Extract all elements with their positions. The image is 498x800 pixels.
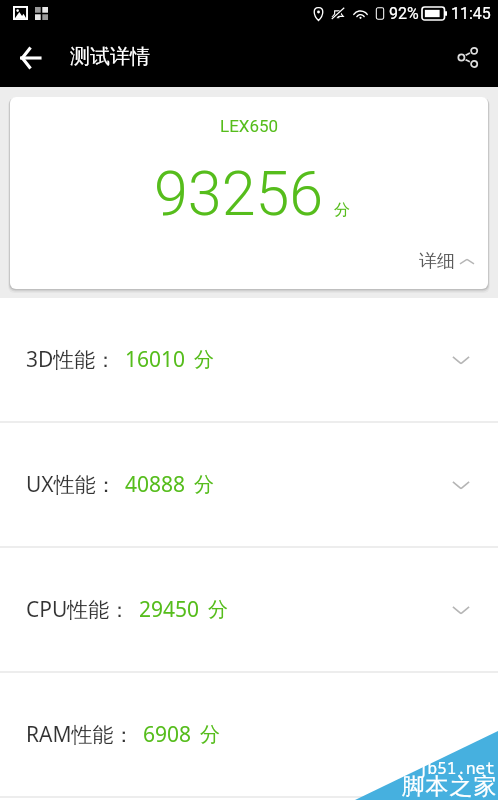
staticText: 3D性能：: [26, 345, 117, 374]
staticText: 6908: [143, 720, 192, 749]
button[interactable]: CPU性能：: [0, 548, 498, 673]
staticText: UX性能：: [26, 470, 117, 499]
staticText: 92%: [389, 4, 419, 23]
staticText: 分: [200, 722, 220, 747]
button[interactable]: UX性能：: [0, 423, 498, 548]
staticText: CPU性能：: [26, 595, 131, 624]
staticText: 脚本之家: [401, 772, 497, 800]
staticText: LEX650: [220, 116, 279, 136]
staticText: 分: [334, 200, 350, 220]
staticText: 分: [208, 597, 228, 622]
button[interactable]: RAM性能：: [0, 673, 498, 798]
staticText: 分: [194, 347, 214, 372]
button[interactable]: LEX650: [10, 97, 488, 289]
staticText: 测试详情: [70, 44, 150, 69]
button[interactable]: 详细: [419, 250, 475, 273]
staticText: jb51.net: [418, 757, 495, 779]
staticText: 分: [194, 472, 214, 497]
staticText: 16010: [125, 345, 186, 374]
staticText: 详细: [419, 250, 455, 273]
button[interactable]: 3D性能：: [0, 298, 498, 423]
staticText: 40888: [125, 470, 186, 499]
staticText: RAM性能：: [26, 720, 135, 749]
button[interactable]: Back: [8, 35, 52, 79]
staticText: 11:45: [451, 4, 491, 23]
staticText: 29450: [139, 595, 200, 624]
button[interactable]: Share: [446, 35, 490, 79]
staticText: 93256: [154, 158, 324, 229]
